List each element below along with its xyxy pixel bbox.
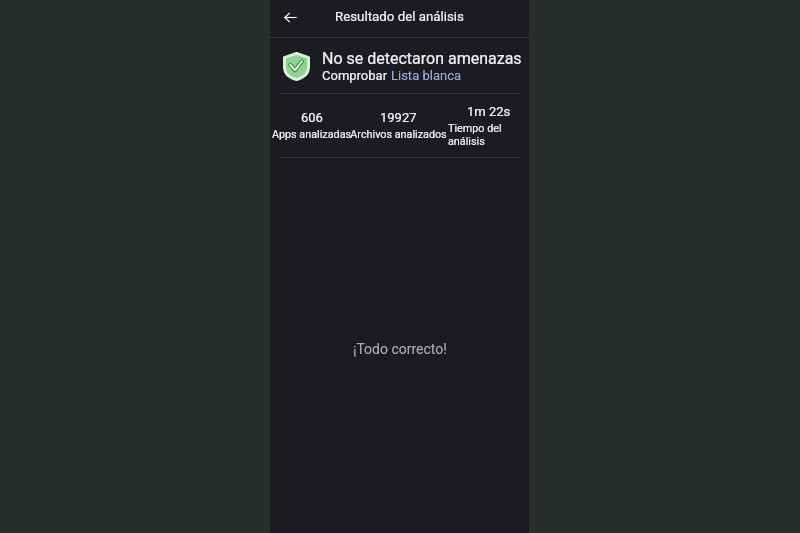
staticText: Comprobar — [322, 68, 391, 83]
staticText: 1m 22s — [467, 104, 511, 119]
staticText: Archivos analizados — [350, 128, 447, 141]
button[interactable]: Lista blanca — [391, 68, 462, 83]
staticText: 606 — [301, 110, 323, 125]
staticText: ¡Todo correcto! — [353, 341, 447, 357]
staticText: Apps analizadas — [271, 128, 352, 141]
staticText: 19927 — [380, 110, 417, 125]
staticText: Resultado del análisis — [335, 9, 464, 25]
button[interactable]: Back — [278, 5, 302, 29]
staticText: No se detectaron amenazas — [322, 49, 522, 68]
staticText: Tiempo del análisis — [448, 122, 530, 148]
